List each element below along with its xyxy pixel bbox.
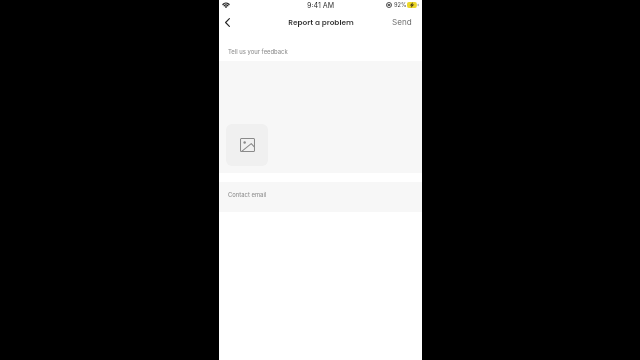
staticText: 92% [394,2,407,9]
staticText: Tell us your feedback [228,48,288,55]
staticText: Contact email [228,191,267,198]
staticText: Send [392,17,412,27]
button[interactable]: Send [382,12,422,32]
button[interactable]: Tell us your feedback [219,36,422,61]
button[interactable]: Contact email [219,182,422,212]
button[interactable]: Add photo [226,124,268,166]
staticText: 9:41 AM [307,1,335,9]
staticText: Report a problem [288,17,354,27]
button[interactable]: Back [217,12,237,32]
